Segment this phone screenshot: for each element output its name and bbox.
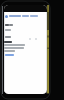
button[interactable] [5, 14, 38, 18]
button[interactable] [4, 41, 30, 57]
button[interactable] [5, 54, 14, 56]
